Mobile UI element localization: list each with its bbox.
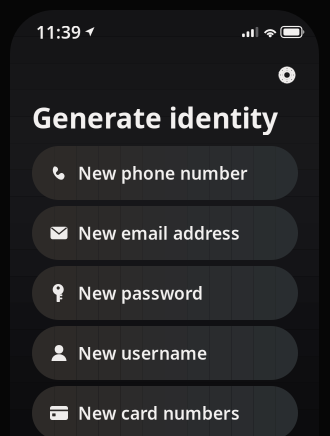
staticText: New password <box>78 281 203 304</box>
staticText: New username <box>78 341 207 364</box>
staticText: New phone number <box>78 161 248 184</box>
button[interactable]: New phone number <box>32 146 298 200</box>
button[interactable]: Settings <box>272 60 302 90</box>
button[interactable]: New email address <box>32 206 298 260</box>
staticText: New card numbers <box>78 401 240 424</box>
button[interactable]: New card numbers <box>32 386 298 436</box>
button[interactable]: New username <box>32 326 298 380</box>
staticText: New email address <box>78 221 240 244</box>
button[interactable]: New password <box>32 266 298 320</box>
staticText: 11:39 <box>36 20 81 43</box>
staticText: Generate identity <box>32 99 278 136</box>
